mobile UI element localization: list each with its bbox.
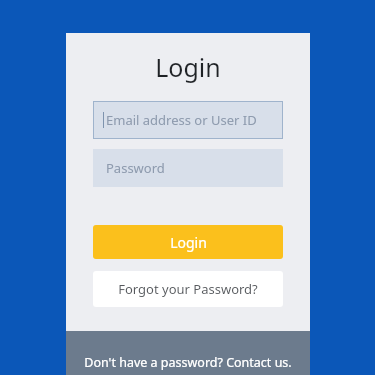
staticText: Login (155, 50, 221, 84)
button[interactable]: Password (93, 149, 283, 187)
staticText: Email address or User ID (106, 111, 257, 129)
button[interactable]: Login (93, 225, 283, 259)
staticText: Forgot your Password? (118, 280, 258, 298)
button[interactable]: Forgot your Password? (93, 271, 283, 307)
button[interactable]: Don't have a password? Contact us. (66, 331, 310, 375)
staticText: Don't have a password? Contact us. (84, 354, 292, 371)
staticText: Password (106, 159, 165, 177)
staticText: Login (170, 233, 207, 252)
button[interactable]: Email address or User ID (93, 101, 283, 139)
